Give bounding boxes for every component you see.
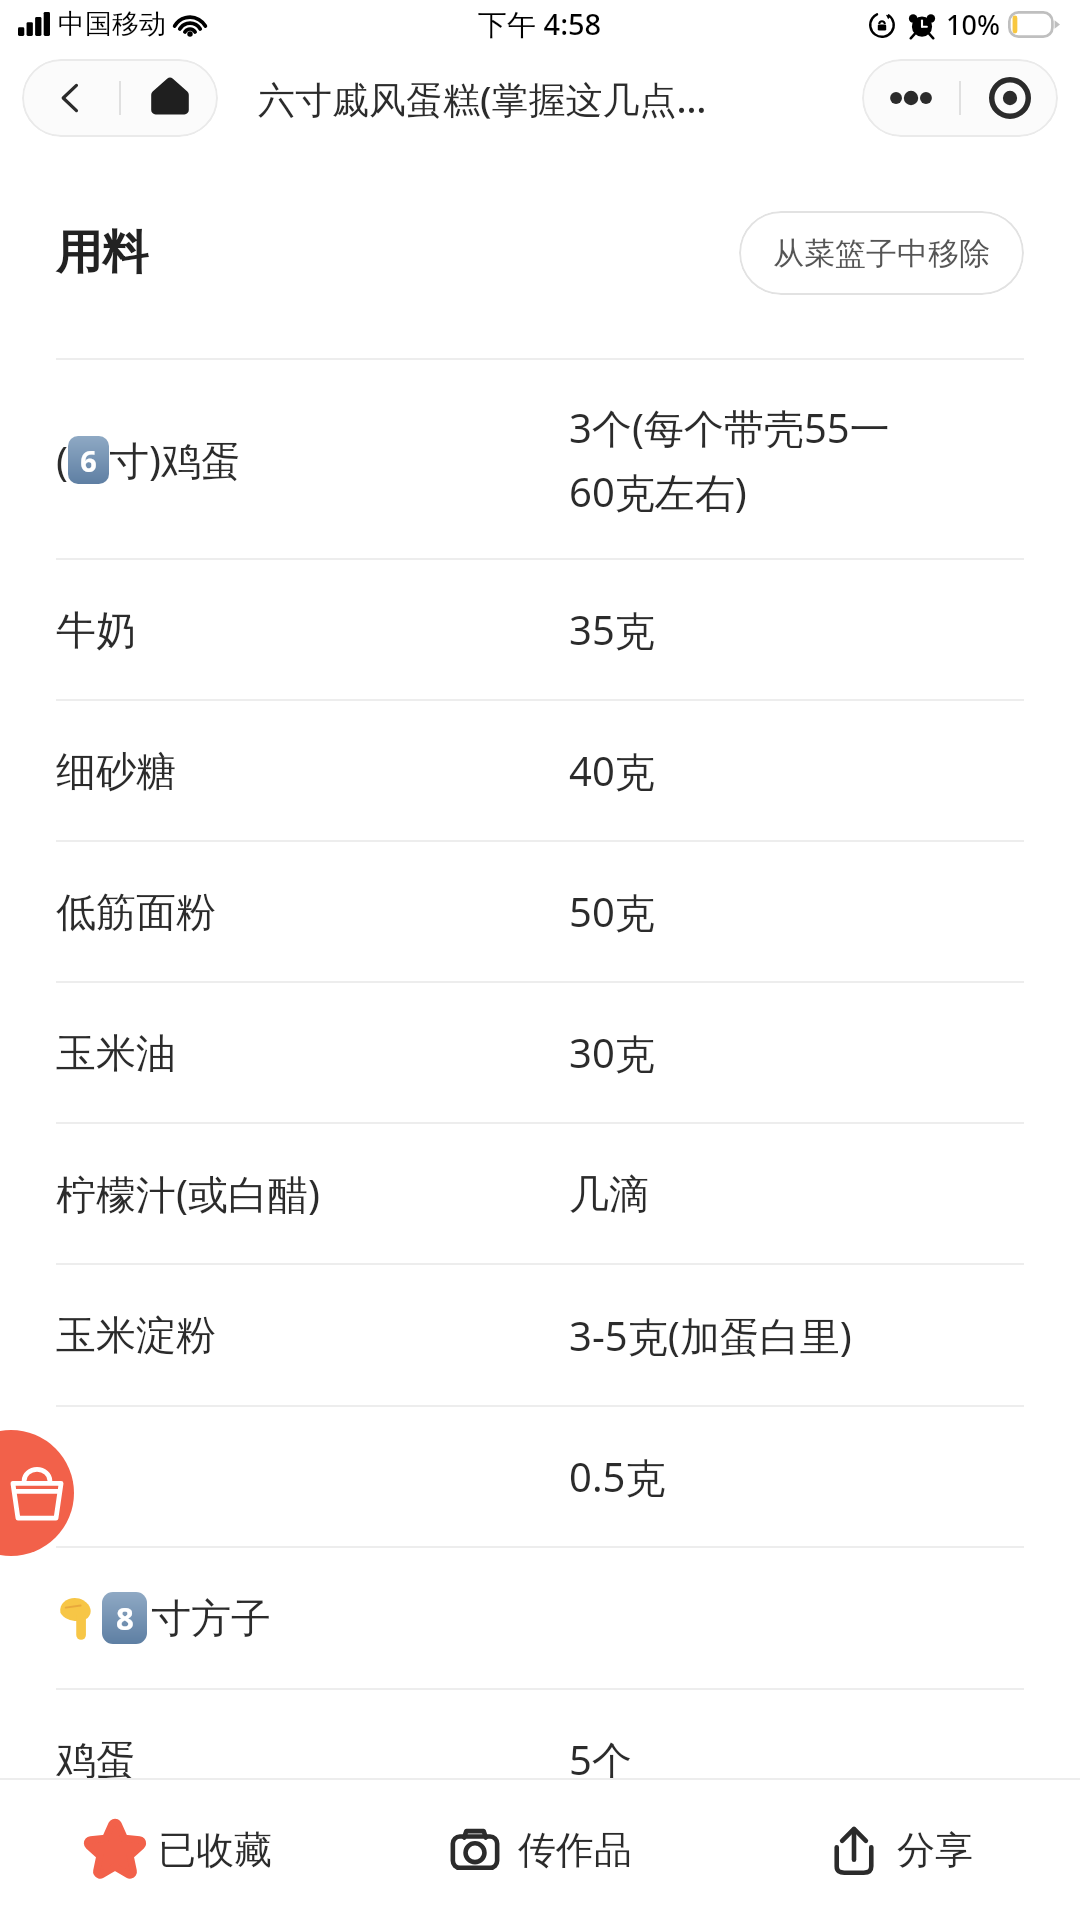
- staticText: 3个(每个带壳55一 60克左右): [569, 400, 890, 519]
- staticText: 牛奶: [56, 605, 136, 655]
- button[interactable]: More options: [862, 59, 959, 137]
- staticText: (: [56, 433, 68, 487]
- button[interactable]: 已收藏: [0, 1780, 360, 1920]
- staticText: 几滴: [569, 1169, 649, 1219]
- staticText: 用料: [56, 224, 148, 282]
- staticText: 35克: [569, 602, 655, 657]
- button[interactable]: 传作品: [360, 1780, 720, 1920]
- staticText: 寸)鸡蛋: [109, 432, 241, 487]
- staticText: 50克: [569, 884, 655, 939]
- button[interactable]: 细砂糖: [0, 701, 1080, 840]
- staticText: 0.5克: [569, 1449, 666, 1504]
- staticText: 5个: [569, 1732, 632, 1787]
- button[interactable]: Shopping basket: [0, 1430, 74, 1556]
- button[interactable]: 鸡蛋: [0, 1690, 1080, 1829]
- staticText: 10%: [946, 6, 1000, 43]
- staticText: 中国移动: [58, 7, 166, 41]
- button[interactable]: 8: [0, 1548, 1080, 1688]
- button[interactable]: Home: [121, 59, 218, 137]
- button[interactable]: 分享: [720, 1780, 1080, 1920]
- staticText: 40克: [569, 743, 655, 798]
- staticText: 30克: [569, 1025, 655, 1080]
- button[interactable]: 玉米油: [0, 983, 1080, 1122]
- button[interactable]: 牛奶: [0, 560, 1080, 699]
- button[interactable]: 柠檬汁(或白醋): [0, 1124, 1080, 1263]
- staticText: 鸡蛋: [56, 1735, 136, 1785]
- staticText: 细砂糖: [56, 746, 176, 796]
- button[interactable]: 低筋面粉: [0, 842, 1080, 981]
- staticText: 玉米淀粉: [56, 1310, 216, 1360]
- staticText: 下午 4:58: [478, 4, 602, 44]
- staticText: 传作品: [518, 1826, 632, 1874]
- staticText: 低筋面粉: [56, 887, 216, 937]
- staticText: 六寸戚风蛋糕(掌握这几点…: [258, 73, 708, 124]
- button[interactable]: (: [0, 360, 1080, 558]
- button[interactable]: 玉米淀粉: [0, 1265, 1080, 1405]
- button[interactable]: Close mini program: [961, 59, 1058, 137]
- staticText: 从菜篮子中移除: [773, 234, 990, 273]
- staticText: 已收藏: [158, 1826, 272, 1874]
- staticText: 寸方子: [151, 1593, 271, 1643]
- staticText: 6: [80, 441, 97, 480]
- button[interactable]: 0.5克: [0, 1407, 1080, 1546]
- staticText: 3-5克(加蛋白里): [569, 1308, 852, 1363]
- staticText: 分享: [897, 1826, 973, 1874]
- staticText: 柠檬汁(或白醋): [56, 1166, 320, 1221]
- staticText: 玉米油: [56, 1028, 176, 1078]
- button[interactable]: Back: [22, 59, 119, 137]
- button[interactable]: 从菜篮子中移除: [739, 211, 1024, 295]
- staticText: 8: [116, 1597, 134, 1639]
